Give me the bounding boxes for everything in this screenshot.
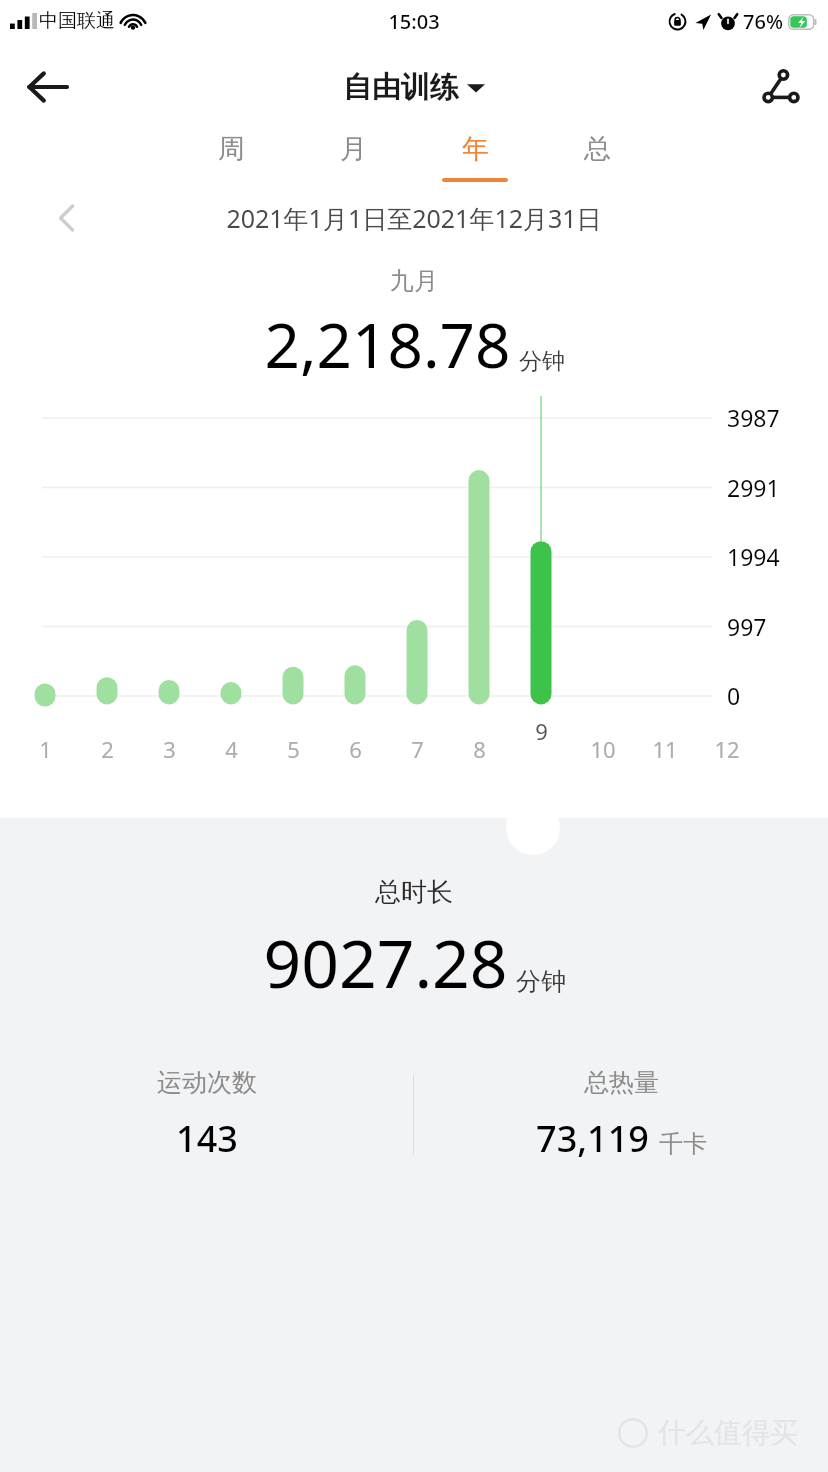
- staticText: 2021年1月1日至2021年12月31日: [226, 201, 602, 235]
- button[interactable]: Share: [752, 58, 810, 116]
- staticText: 九月: [390, 266, 438, 296]
- staticText: 73,119: [536, 1114, 649, 1163]
- staticText: 中国联通: [39, 9, 115, 33]
- staticText: 分钟: [519, 347, 565, 376]
- button[interactable]: 月: [292, 132, 414, 182]
- staticText: 997: [727, 611, 767, 642]
- staticText: 3: [163, 734, 176, 764]
- staticText: 3987: [727, 402, 780, 433]
- button[interactable]: 总: [536, 132, 658, 182]
- staticText: 6: [349, 734, 362, 764]
- staticText: 总热量: [584, 1067, 659, 1098]
- staticText: 千卡: [659, 1129, 707, 1159]
- staticText: 运动次数: [157, 1067, 257, 1098]
- staticText: 143: [176, 1114, 238, 1163]
- staticText: 1994: [727, 541, 780, 572]
- staticText: 总: [584, 132, 611, 166]
- staticText: 周: [218, 132, 245, 166]
- staticText: 总时长: [375, 876, 453, 909]
- button[interactable]: 运动次数: [0, 1055, 413, 1175]
- staticText: 2: [101, 734, 114, 764]
- button[interactable]: Previous: [40, 191, 94, 245]
- staticText: 4: [225, 734, 238, 764]
- button[interactable]: 总热量: [414, 1055, 828, 1175]
- staticText: 2,218.78: [264, 302, 511, 386]
- staticText: 10: [590, 734, 616, 764]
- staticText: 15:03: [388, 8, 440, 35]
- button[interactable]: 周: [170, 132, 292, 182]
- staticText: 月: [340, 132, 367, 166]
- staticText: 自由训练: [343, 69, 459, 106]
- staticText: 分钟: [516, 966, 566, 997]
- staticText: 年: [462, 132, 489, 166]
- staticText: 11: [652, 734, 678, 764]
- staticText: 5: [287, 734, 300, 764]
- staticText: 2991: [727, 472, 780, 503]
- staticText: 7: [411, 734, 424, 764]
- staticText: 12: [714, 734, 740, 764]
- staticText: 什么值得买: [658, 1415, 798, 1450]
- staticText: 76%: [743, 8, 783, 35]
- button[interactable]: 自由训练: [343, 69, 485, 106]
- button[interactable]: 年: [414, 132, 536, 182]
- staticText: 0: [727, 680, 741, 711]
- staticText: 1: [39, 734, 52, 764]
- staticText: 8: [473, 734, 486, 764]
- staticText: 9: [535, 716, 548, 746]
- staticText: 9027.28: [263, 917, 508, 1007]
- button[interactable]: Back: [18, 58, 76, 116]
